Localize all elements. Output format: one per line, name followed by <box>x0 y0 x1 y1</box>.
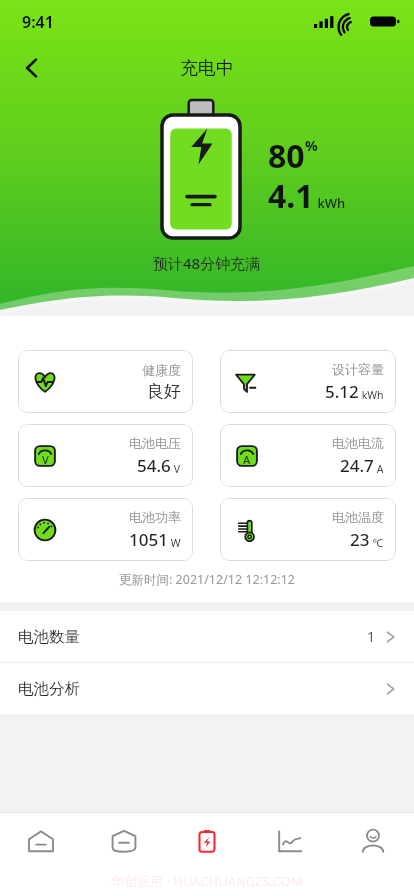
button[interactable]: Home <box>0 813 82 869</box>
button[interactable]: Statistics <box>248 813 331 869</box>
staticText: 9:41 <box>22 11 54 33</box>
button[interactable]: 电池数量 <box>0 611 414 662</box>
staticText: 电池电流 <box>332 435 384 451</box>
button[interactable]: 电池功率 <box>18 498 193 561</box>
button[interactable]: Profile <box>331 813 414 869</box>
staticText: 54.6 <box>137 454 171 477</box>
staticText: kWh <box>359 388 384 402</box>
staticText: 预计48分钟充满 <box>153 253 261 273</box>
staticText: 1051 <box>129 528 168 551</box>
staticText: 5.12 <box>325 380 359 403</box>
button[interactable]: 设计容量 <box>220 350 396 413</box>
staticText: 良好 <box>147 381 181 402</box>
button[interactable]: Device <box>82 813 165 869</box>
staticText: 设计容量 <box>332 361 384 377</box>
staticText: 80 <box>268 134 305 178</box>
button[interactable]: 电池温度 <box>220 498 396 561</box>
staticText: 4.1 <box>268 174 314 218</box>
staticText: W <box>168 536 181 550</box>
staticText: 更新时间: 2021/12/12 12:12:12 <box>0 571 414 588</box>
staticText: % <box>305 136 318 155</box>
button[interactable]: V <box>18 424 193 487</box>
button[interactable]: Back <box>8 44 56 92</box>
staticText: 充电中 <box>180 57 234 80</box>
staticText: 健康度 <box>142 362 181 378</box>
staticText: ℃ <box>370 536 384 550</box>
button[interactable]: 健康度 <box>18 350 193 413</box>
staticText: A <box>374 462 384 476</box>
staticText: V <box>171 462 181 476</box>
staticText: 23 <box>350 528 370 551</box>
button[interactable]: 电池分析 <box>0 663 414 714</box>
staticText: 电池数量 <box>18 627 80 647</box>
staticText: 1 <box>367 627 376 646</box>
staticText: 电池分析 <box>18 679 80 699</box>
staticText: V <box>42 452 49 467</box>
staticText: 华创应用 · HUACHUANGZS.COM <box>111 872 303 890</box>
staticText: 24.7 <box>340 454 374 477</box>
button[interactable]: A <box>220 424 396 487</box>
staticText: kWh <box>314 194 346 212</box>
staticText: 电池温度 <box>332 509 384 525</box>
staticText: A <box>243 452 251 467</box>
staticText: 电池电压 <box>129 435 181 451</box>
staticText: 电池功率 <box>129 509 181 525</box>
button[interactable]: Battery <box>165 813 248 869</box>
